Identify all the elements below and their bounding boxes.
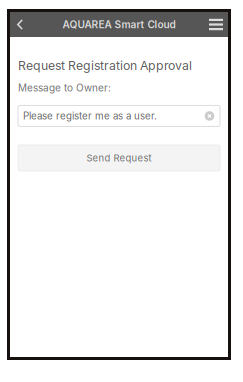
staticText: Request Registration Approval <box>18 58 192 73</box>
button[interactable]: Clear text <box>203 109 216 122</box>
button[interactable]: Back <box>10 12 30 37</box>
button[interactable]: Menu <box>204 12 228 37</box>
staticText: Send Request <box>86 152 151 164</box>
button[interactable]: Send Request <box>18 145 220 171</box>
staticText: Message to Owner: <box>18 82 111 94</box>
staticText: Please register me as a user. <box>23 110 157 122</box>
staticText: AQUAREA Smart Cloud <box>62 18 175 31</box>
